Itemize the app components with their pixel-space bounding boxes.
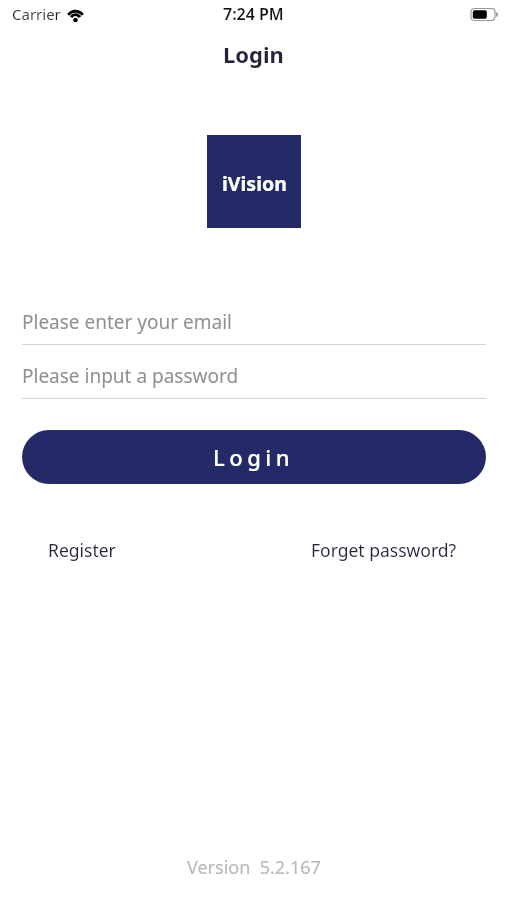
button[interactable]: Login [22,430,486,484]
button[interactable]: Register [36,526,128,574]
staticText: Forget password? [311,538,457,562]
button[interactable]: Please input a password [22,352,486,399]
staticText: Version 5.2.167 [187,855,321,880]
staticText: Register [48,538,116,562]
staticText: iVision [222,170,287,197]
staticText: Please input a password [22,363,239,389]
staticText: 7:24 PM [223,3,284,25]
staticText: Please enter your email [22,309,233,335]
staticText: Login [213,442,295,472]
button[interactable]: Forget password? [299,526,469,574]
staticText: Login [223,39,284,69]
staticText: Carrier [12,4,61,24]
button[interactable]: Please enter your email [22,298,486,345]
